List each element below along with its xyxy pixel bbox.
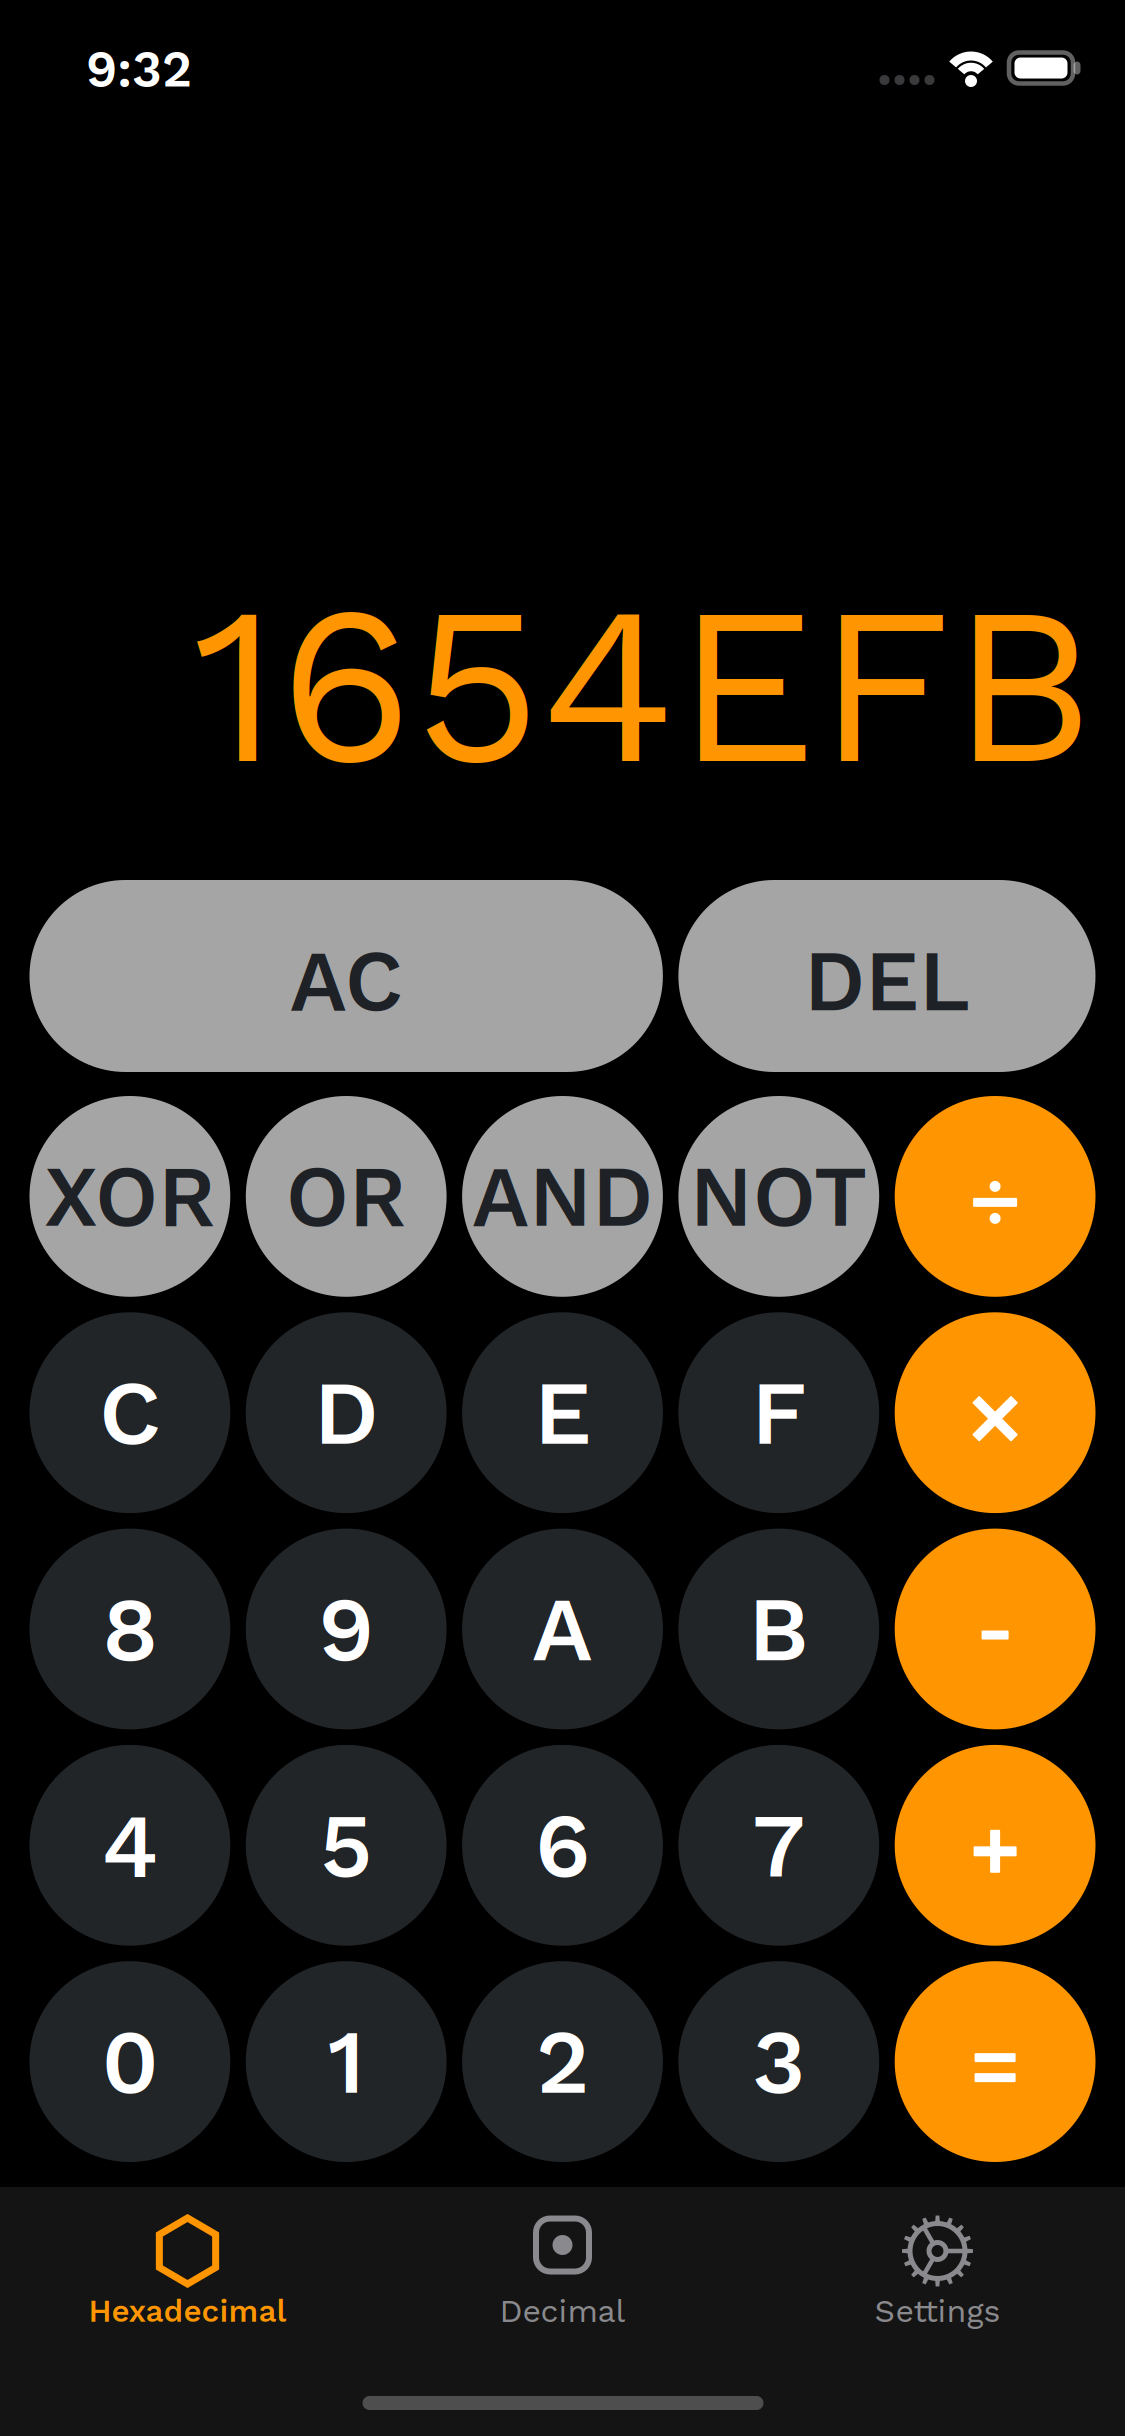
staticText: Settings <box>874 2292 1000 2330</box>
staticText: A <box>532 1576 593 1682</box>
button[interactable]: Hexadecimal <box>0 2187 375 2436</box>
staticText: AC <box>290 931 403 1031</box>
staticText: 7 <box>752 1792 805 1898</box>
staticText: DEL <box>804 931 970 1031</box>
staticText: NOT <box>690 1146 868 1246</box>
button[interactable]: AND <box>462 1096 663 1297</box>
button[interactable]: 1 <box>246 1961 447 2162</box>
button[interactable]: 4 <box>29 1745 230 1946</box>
button[interactable]: Add <box>895 1745 1095 1946</box>
button[interactable]: 2 <box>462 1961 663 2162</box>
staticText: 1654EFB <box>193 555 1095 815</box>
button[interactable]: 7 <box>678 1745 879 1946</box>
staticText: 1 <box>328 2008 365 2115</box>
staticText: OR <box>286 1146 407 1246</box>
button[interactable]: 5 <box>246 1745 447 1946</box>
staticText: 5 <box>320 1792 373 1898</box>
staticText: 8 <box>102 1576 158 1682</box>
button[interactable]: Equals <box>895 1961 1095 2162</box>
staticText: 2 <box>536 2008 589 2115</box>
staticText: E <box>534 1359 591 1466</box>
button[interactable]: Divide <box>895 1096 1095 1297</box>
button[interactable]: Decimal <box>375 2187 750 2436</box>
staticText: B <box>748 1576 809 1682</box>
button[interactable]: AC <box>29 880 663 1072</box>
button[interactable]: Settings <box>750 2187 1125 2436</box>
staticText: 3 <box>752 2008 805 2115</box>
button[interactable]: E <box>462 1312 663 1513</box>
button[interactable]: XOR <box>29 1096 230 1297</box>
staticText: 0 <box>101 2008 158 2115</box>
button[interactable]: B <box>678 1529 879 1729</box>
button[interactable]: Multiply <box>895 1312 1095 1513</box>
staticText: F <box>751 1359 806 1466</box>
staticText: 9 <box>318 1576 374 1682</box>
button[interactable]: F <box>678 1312 879 1513</box>
button[interactable]: DEL <box>678 880 1095 1072</box>
button[interactable]: 9 <box>246 1529 447 1729</box>
button[interactable]: C <box>29 1312 230 1513</box>
button[interactable]: Subtract <box>895 1529 1095 1729</box>
staticText: 6 <box>535 1792 590 1898</box>
staticText: 9:32 <box>86 39 192 99</box>
button[interactable]: 3 <box>678 1961 879 2162</box>
staticText: XOR <box>44 1146 216 1246</box>
staticText: C <box>99 1359 161 1466</box>
staticText: 4 <box>101 1792 158 1898</box>
staticText: Decimal <box>499 2292 625 2330</box>
button[interactable]: D <box>246 1312 447 1513</box>
button[interactable]: 0 <box>29 1961 230 2162</box>
button[interactable]: NOT <box>678 1096 879 1297</box>
button[interactable]: A <box>462 1529 663 1729</box>
staticText: AND <box>472 1146 653 1246</box>
button[interactable]: OR <box>246 1096 447 1297</box>
staticText: Hexadecimal <box>88 2293 286 2329</box>
button[interactable]: 6 <box>462 1745 663 1946</box>
staticText: D <box>314 1359 379 1466</box>
button[interactable]: 8 <box>29 1529 230 1729</box>
